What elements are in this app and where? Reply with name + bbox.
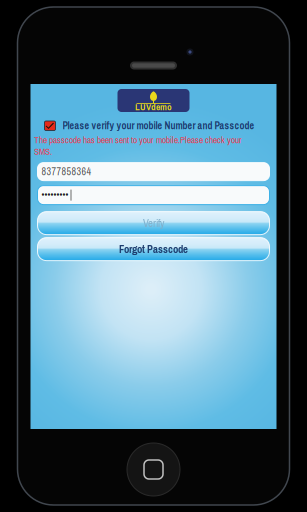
staticText: LUVdemo [135,100,172,113]
button[interactable]: Forgot Passcode [37,238,269,261]
staticText: Forgot Passcode [119,242,188,256]
staticText: SMS. [34,145,52,158]
staticText: The passcode has been sent to your mobil… [34,133,242,146]
staticText: 8377858364 [41,165,91,178]
staticText: Verify [143,216,164,230]
button[interactable]: Verify [37,212,269,235]
staticText: ••••••••• [41,188,68,202]
staticText: Please verify your mobile Number and Pas… [62,119,254,132]
